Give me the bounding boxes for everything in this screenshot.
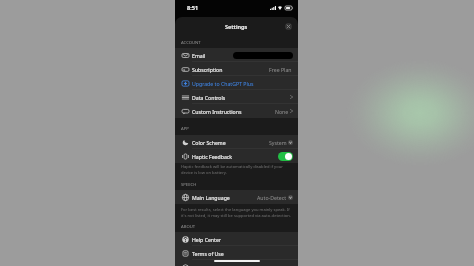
button[interactable]: Upgrade to ChatGPT Plus <box>175 76 298 90</box>
staticText: Haptic Feedback <box>192 153 233 160</box>
staticText: For best results, select the language yo… <box>181 207 294 218</box>
staticText: Upgrade to ChatGPT Plus <box>192 80 254 87</box>
button[interactable]: Custom Instructions <box>175 104 298 118</box>
staticText: Help Center <box>192 236 221 243</box>
staticText: Auto-Detect <box>257 194 287 201</box>
button[interactable]: Email <box>175 48 298 62</box>
staticText: ABOUT <box>181 224 196 230</box>
button[interactable]: Subscription <box>175 62 298 76</box>
button[interactable]: Close settings <box>285 23 292 30</box>
staticText: APP <box>181 126 189 132</box>
button[interactable]: Data Controls <box>175 90 298 104</box>
staticText: Data Controls <box>192 94 226 101</box>
button[interactable]: Terms of Use <box>175 246 298 260</box>
staticText: Haptic feedback will be automatically di… <box>181 164 294 175</box>
staticText: Free Plan <box>269 66 292 73</box>
staticText: Email <box>192 52 206 59</box>
staticText: Color Scheme <box>192 139 226 146</box>
button[interactable]: Help Center <box>175 232 298 246</box>
staticText: Subscription <box>192 66 223 73</box>
staticText: None <box>275 108 289 115</box>
button[interactable]: Haptic Feedback <box>175 149 298 163</box>
staticText: System <box>269 139 287 146</box>
staticText: Settings <box>225 23 248 31</box>
staticText: Main Language <box>192 194 230 201</box>
staticText: Custom Instructions <box>192 108 242 115</box>
button[interactable]: Color Scheme <box>175 135 298 149</box>
staticText: 8:51 <box>187 4 199 12</box>
staticText: Terms of Use <box>192 250 224 257</box>
button[interactable]: Main Language <box>175 190 298 204</box>
staticText: SPEECH <box>181 182 197 188</box>
staticText: ACCOUNT <box>181 40 201 46</box>
button[interactable]: Privacy Policy <box>175 260 298 266</box>
